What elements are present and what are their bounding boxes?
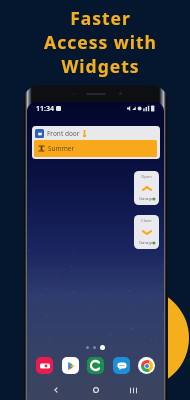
button[interactable]: Messages [113,357,130,374]
staticText: Widgets [61,54,140,78]
staticText: Faster [70,6,131,30]
button[interactable]: Camera [36,357,53,374]
staticText: Garage [139,240,154,246]
staticText: Access with [44,30,157,54]
staticText: 11:34 [36,104,54,114]
staticText: Front door [47,129,80,138]
button[interactable]: Front door [32,126,160,159]
button[interactable]: Chrome [138,357,155,374]
staticText: Garage [139,196,154,202]
staticText: Open [141,174,152,180]
button[interactable]: Back [50,384,62,396]
staticText: Summer [48,144,75,153]
button[interactable]: Play Store [62,357,79,374]
staticText: Close [141,218,152,224]
button[interactable]: Recent apps [127,384,139,396]
button[interactable]: Close [134,215,159,249]
button[interactable]: Home [90,384,102,396]
button[interactable]: Open [134,171,159,205]
button[interactable]: Contacts [87,357,104,374]
